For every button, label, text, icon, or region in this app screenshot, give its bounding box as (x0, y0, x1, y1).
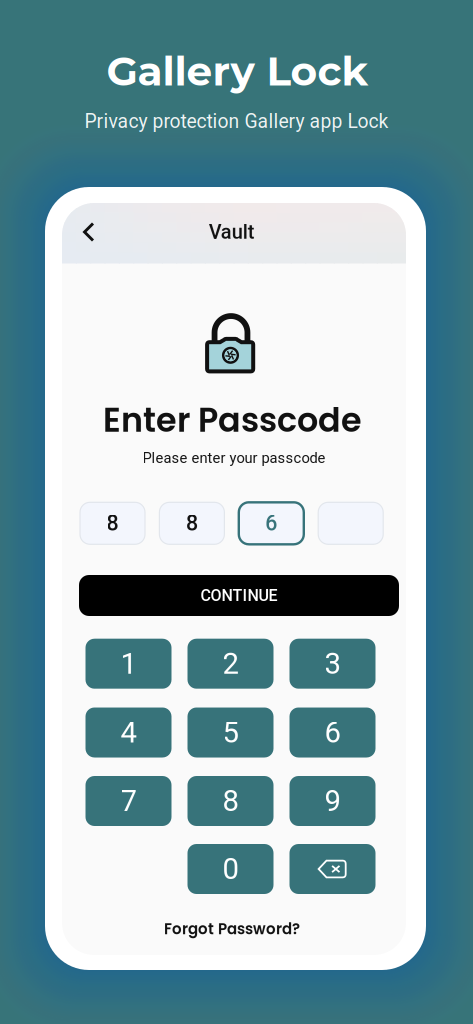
button[interactable]: CONTINUE (79, 575, 399, 616)
staticText: Privacy protection Gallery app Lock (84, 110, 388, 133)
button[interactable]: 9 (289, 776, 375, 826)
button[interactable]: 7 (85, 776, 171, 826)
button[interactable]: Delete (289, 844, 375, 894)
button[interactable]: 8 (187, 776, 273, 826)
staticText: 8 (106, 511, 118, 536)
staticText: 0 (222, 852, 238, 886)
staticText: Forgot Password? (164, 918, 300, 939)
button[interactable]: 1 (85, 639, 171, 689)
staticText: 7 (120, 784, 136, 818)
staticText: 5 (222, 715, 238, 750)
staticText: Vault (209, 220, 255, 244)
staticText: 8 (222, 784, 238, 818)
button[interactable]: 2 (187, 639, 273, 689)
button[interactable]: 5 (187, 707, 273, 757)
staticText: CONTINUE (200, 586, 277, 605)
button[interactable]: 4 (85, 707, 171, 757)
staticText: 1 (120, 646, 136, 681)
staticText: 9 (324, 784, 340, 818)
staticText: Enter Passcode (103, 397, 362, 443)
staticText: 6 (265, 511, 277, 536)
button[interactable]: 6 (289, 707, 375, 757)
staticText: 3 (324, 646, 340, 681)
staticText: Gallery Lock (106, 46, 368, 96)
button[interactable]: Back (67, 210, 111, 254)
button[interactable]: 0 (187, 844, 273, 894)
staticText: 6 (324, 715, 340, 750)
staticText: 8 (186, 511, 198, 536)
staticText: 2 (222, 646, 238, 681)
staticText: Please enter your passcode (142, 449, 325, 467)
staticText: 4 (120, 715, 136, 750)
button[interactable]: Forgot Password? (160, 914, 304, 943)
button[interactable]: 3 (289, 639, 375, 689)
